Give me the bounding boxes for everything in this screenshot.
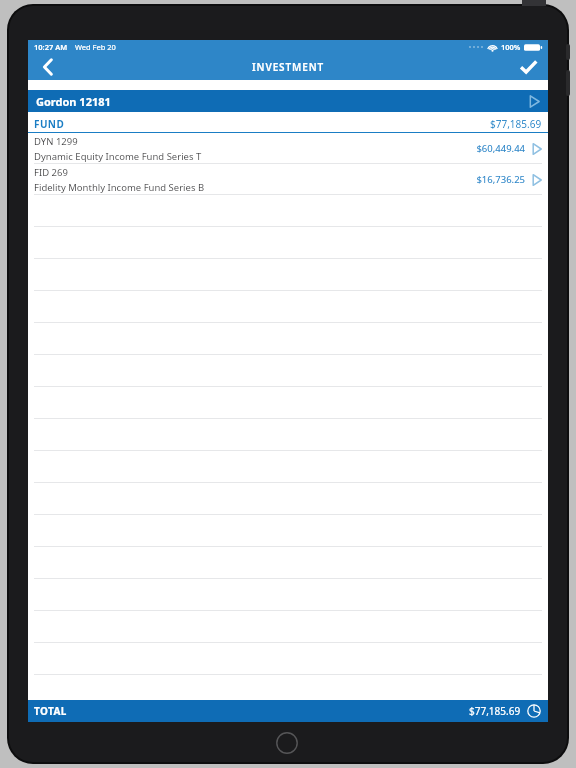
staticText: Dynamic Equity Income Fund Series T [34,150,202,163]
staticText: $77,185.69 [490,117,542,131]
staticText: FUND [34,117,65,131]
staticText: $16,736.25 [476,173,525,186]
button[interactable]: Chart [526,703,542,719]
button[interactable]: Home [276,732,298,754]
button[interactable]: DYN 1299 [28,133,548,164]
staticText: TOTAL [34,704,67,718]
button[interactable]: FID 269 [28,164,548,195]
button[interactable]: Back [28,54,68,80]
staticText: 100% [501,42,521,52]
staticText: 10:27 AM [34,42,68,52]
staticText: DYN 1299 [34,135,78,148]
staticText: Fidelity Monthly Income Fund Series B [34,181,205,194]
staticText: Gordon 12181 [36,94,111,109]
staticText: Wed Feb 20 [75,42,116,52]
button[interactable]: TOTAL [28,700,548,722]
staticText: FID 269 [34,166,68,179]
staticText: $77,185.69 [469,704,521,718]
button[interactable]: Confirm [508,54,548,80]
button[interactable]: Gordon 12181 [28,90,548,112]
staticText: INVESTMENT [252,60,325,74]
staticText: $60,449.44 [476,142,525,155]
